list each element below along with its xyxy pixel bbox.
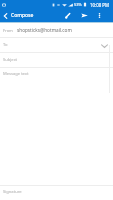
staticText: Message text (3, 71, 29, 77)
button[interactable]: More options (93, 9, 105, 22)
staticText: 10:08 PM (90, 2, 110, 8)
staticText: To (3, 42, 8, 48)
button[interactable]: Expand recipients (100, 38, 109, 52)
staticText: 53% (74, 2, 82, 7)
button[interactable]: Send (76, 9, 93, 22)
staticText: Compose (11, 12, 34, 19)
staticText: Signature (3, 189, 22, 195)
staticText: From (3, 28, 13, 33)
staticText: Subject (3, 57, 18, 63)
button[interactable]: Attach file (59, 9, 76, 22)
staticText: shopsticks@hotmail.com (17, 27, 72, 33)
button[interactable]: Back (0, 9, 11, 22)
